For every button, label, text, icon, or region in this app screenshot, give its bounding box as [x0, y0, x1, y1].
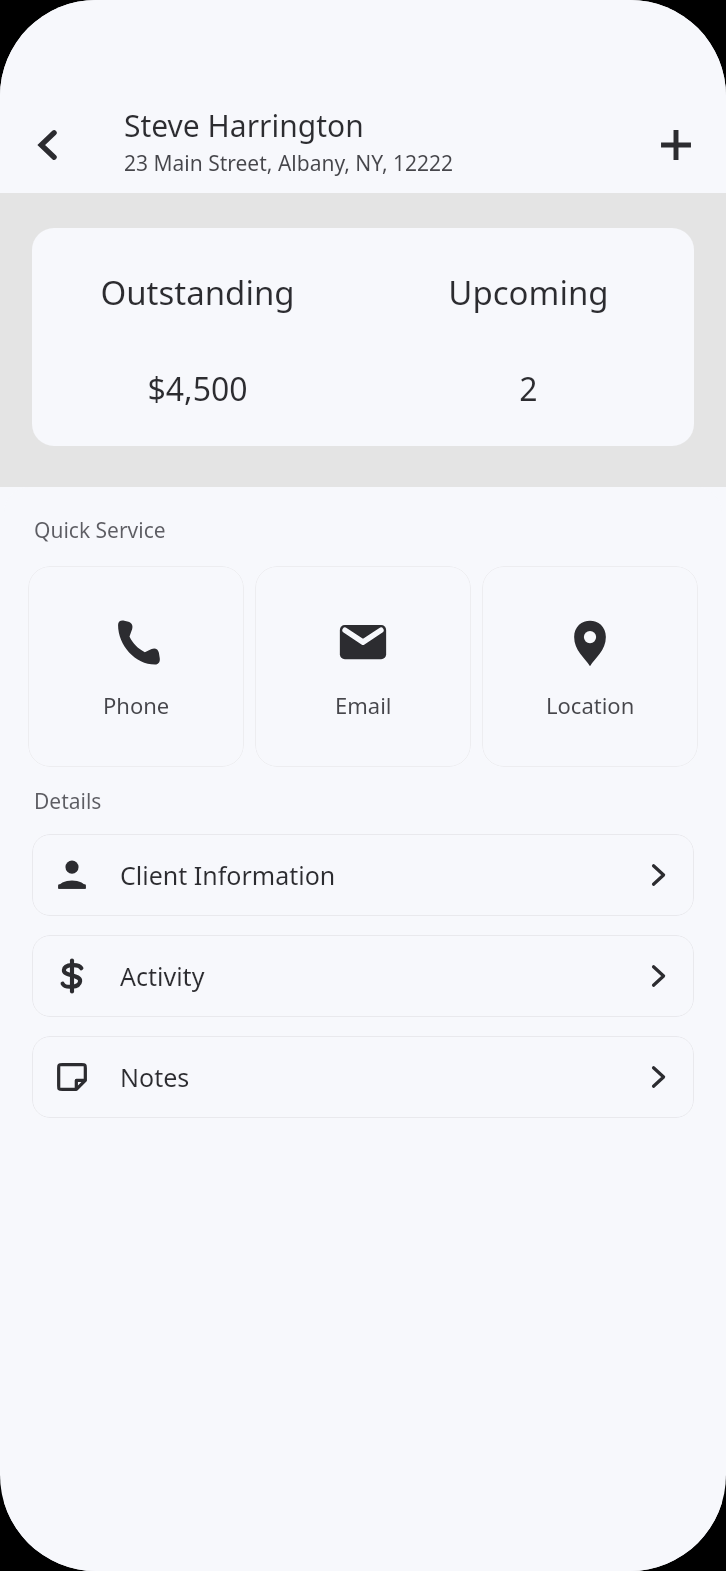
button[interactable]: Client Information — [32, 834, 694, 916]
staticText: Steve Harrington — [124, 105, 364, 146]
button[interactable]: Outstanding — [32, 228, 694, 446]
staticText: Details — [34, 787, 102, 816]
button[interactable]: Notes — [32, 1036, 694, 1118]
staticText: Email — [335, 690, 392, 720]
staticText: Activity — [120, 959, 644, 993]
staticText: Upcoming — [448, 270, 609, 315]
button[interactable]: Phone — [28, 566, 244, 767]
staticText: Location — [546, 690, 635, 720]
button[interactable]: Activity — [32, 935, 694, 1017]
staticText: $4,500 — [147, 367, 248, 411]
staticText: Outstanding — [100, 270, 295, 315]
button[interactable]: Location — [482, 566, 698, 767]
staticText: 2 — [519, 367, 538, 411]
button[interactable]: Add — [644, 113, 708, 177]
button[interactable]: Email — [255, 566, 471, 767]
staticText: Client Information — [120, 858, 644, 892]
staticText: Phone — [103, 690, 170, 720]
button[interactable]: Back — [16, 113, 80, 177]
staticText: 23 Main Street, Albany, NY, 12222 — [124, 149, 454, 178]
staticText: Quick Service — [34, 516, 166, 545]
staticText: Notes — [120, 1060, 644, 1094]
